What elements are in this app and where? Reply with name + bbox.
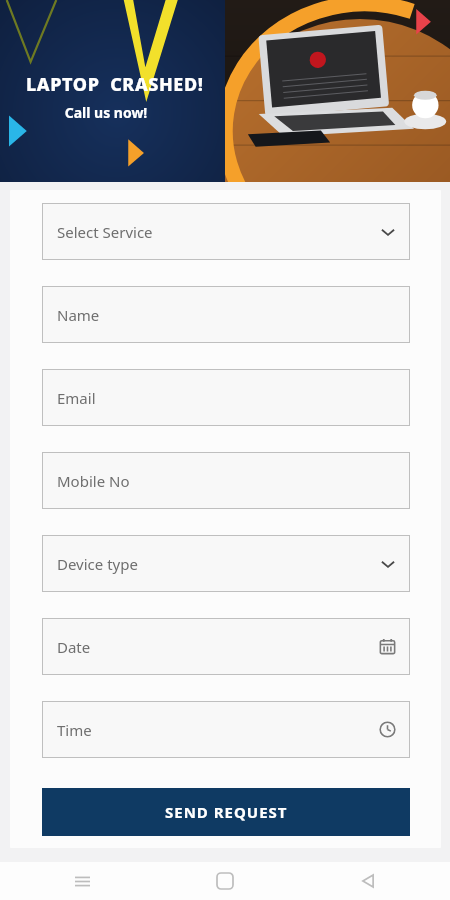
staticText: Call us now! (26, 103, 186, 122)
button[interactable]: Mobile No (42, 452, 410, 509)
button[interactable]: Recent apps (60, 862, 104, 900)
button[interactable]: Email (42, 369, 410, 426)
staticText: Name (57, 305, 396, 325)
button[interactable]: Select Service (42, 203, 410, 260)
button[interactable]: Time (42, 701, 410, 758)
staticText: Time (57, 720, 379, 740)
button[interactable]: Name (42, 286, 410, 343)
staticText: Device type (57, 554, 380, 574)
button[interactable]: Device type (42, 535, 410, 592)
button[interactable]: SEND REQUEST (42, 788, 410, 836)
button[interactable]: Back (346, 862, 390, 900)
staticText: LAPTOP CRASHED! (26, 72, 204, 97)
staticText: Date (57, 637, 379, 657)
button[interactable]: Date (42, 618, 410, 675)
staticText: Select Service (57, 222, 380, 242)
staticText: Email (57, 388, 396, 408)
button[interactable]: Home (203, 862, 247, 900)
staticText: SEND REQUEST (165, 802, 288, 822)
button[interactable]: Laptop crashed promo banner (0, 0, 450, 182)
staticText: Mobile No (57, 471, 396, 491)
